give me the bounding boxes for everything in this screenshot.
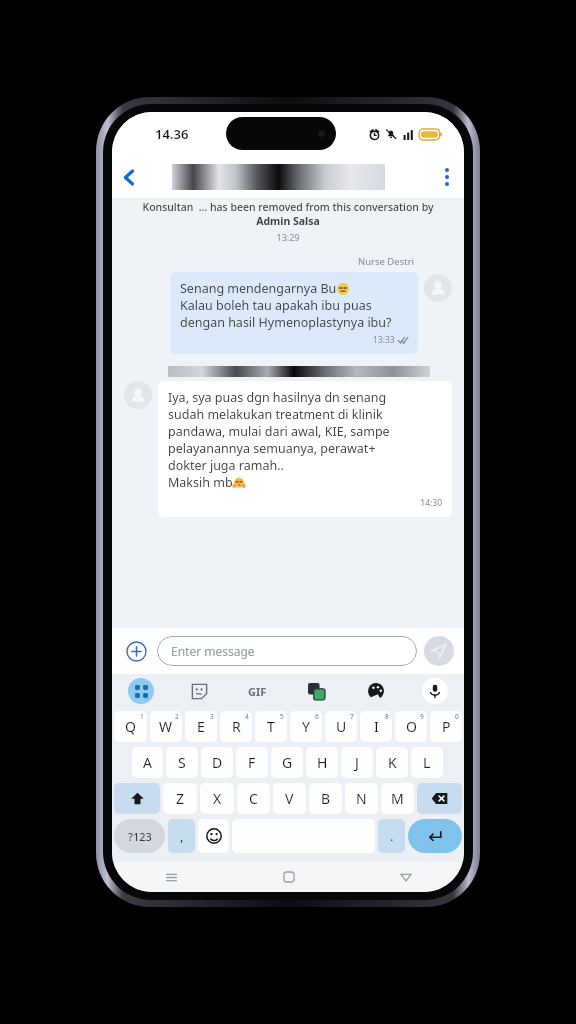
staticText: dokter juga ramah..	[168, 457, 284, 474]
button[interactable]: Apps	[128, 678, 154, 704]
button[interactable]: Emoji	[198, 819, 229, 853]
button[interactable]: K	[376, 747, 408, 778]
staticText: 7	[350, 712, 354, 721]
staticText: H	[317, 753, 328, 772]
staticText: Q	[125, 717, 136, 736]
button[interactable]: Z	[163, 783, 197, 814]
button[interactable]: ?123	[114, 819, 165, 853]
staticText: W	[159, 717, 173, 736]
staticText: 8	[385, 712, 389, 721]
staticText: Konsultan … has been removed from this c…	[124, 200, 452, 214]
button[interactable]: F	[236, 747, 268, 778]
staticText: J	[355, 753, 359, 772]
button[interactable]: Backspace	[417, 783, 462, 814]
staticText: A	[143, 753, 152, 772]
button[interactable]: N	[345, 783, 378, 814]
staticText: Enter message	[171, 643, 255, 659]
staticText: 14:30	[168, 497, 442, 509]
button[interactable]: C	[237, 783, 270, 814]
staticText: P	[442, 717, 451, 736]
staticText: Admin Salsa	[124, 214, 452, 228]
button[interactable]: Stickers	[170, 674, 228, 708]
button[interactable]: P	[430, 711, 462, 742]
staticText: 13:29	[124, 231, 452, 243]
button[interactable]: Enter message	[157, 636, 417, 666]
staticText: dengan hasil Hymenoplastynya ibu?	[180, 314, 392, 331]
button[interactable]: H	[306, 747, 338, 778]
staticText: V	[285, 789, 294, 808]
button[interactable]: Shift	[114, 783, 160, 814]
button[interactable]	[146, 156, 430, 198]
staticText: 13:33	[373, 334, 395, 346]
staticText: pandawa, mulai dari awal, KIE, sampe	[168, 423, 390, 440]
staticText: I	[374, 717, 379, 736]
staticText: Iya, sya puas dgn hasilnya dn senang	[168, 389, 387, 406]
button[interactable]: Send	[424, 636, 454, 666]
staticText: 1	[140, 712, 144, 721]
button[interactable]: V	[273, 783, 306, 814]
button[interactable]: B	[309, 783, 342, 814]
staticText: 3	[210, 712, 214, 721]
button[interactable]: T	[255, 711, 287, 742]
button[interactable]: J	[341, 747, 373, 778]
button[interactable]: Y	[290, 711, 322, 742]
button[interactable]: Q	[114, 711, 147, 742]
button[interactable]: Translate	[287, 674, 346, 708]
staticText: U	[336, 717, 347, 736]
button[interactable]: W	[150, 711, 182, 742]
staticText: N	[356, 789, 367, 808]
button[interactable]: G	[271, 747, 303, 778]
staticText: K	[388, 753, 397, 772]
button[interactable]: Voice input	[422, 678, 448, 704]
staticText: ?123	[128, 829, 152, 844]
staticText: F	[248, 753, 256, 772]
button[interactable]: Enter	[408, 819, 462, 853]
button[interactable]: U	[325, 711, 357, 742]
staticText: 4	[245, 712, 249, 721]
staticText: X	[213, 789, 222, 808]
button[interactable]: Iya, sya puas dgn hasilnya dn senang	[158, 381, 452, 517]
staticText: 2	[175, 712, 179, 721]
staticText: Z	[176, 789, 185, 808]
button[interactable]: ,	[168, 819, 195, 853]
staticText: B	[321, 789, 331, 808]
staticText: S	[178, 753, 186, 772]
button[interactable]: Themes	[346, 674, 405, 708]
button[interactable]: E	[185, 711, 217, 742]
button[interactable]: Recent apps	[112, 862, 230, 892]
staticText: .	[390, 827, 394, 845]
button[interactable]: R	[220, 711, 252, 742]
button[interactable]: GIF	[228, 674, 287, 708]
staticText: D	[212, 753, 223, 772]
staticText: ,	[180, 827, 184, 845]
staticText: T	[267, 717, 275, 736]
staticText: 0	[455, 712, 459, 721]
button[interactable]: .	[378, 819, 405, 853]
staticText: 14.36	[155, 125, 189, 143]
button[interactable]: More options	[430, 156, 464, 198]
button[interactable]: S	[166, 747, 198, 778]
staticText: 5	[280, 712, 284, 721]
button[interactable]: Back	[112, 156, 146, 198]
button[interactable]: I	[360, 711, 392, 742]
button[interactable]: Back	[347, 862, 464, 892]
button[interactable]: D	[201, 747, 233, 778]
button[interactable]: O	[395, 711, 427, 742]
button[interactable]: L	[411, 747, 443, 778]
staticText: G	[282, 753, 293, 772]
button[interactable]: A	[132, 747, 163, 778]
staticText: 9	[420, 712, 424, 721]
staticText: C	[249, 789, 258, 808]
button[interactable]: Add attachment	[122, 637, 150, 665]
staticText: Nurse Destri	[124, 255, 414, 268]
staticText: L	[423, 753, 431, 772]
staticText: pelayanannya semuanya, perawat+	[168, 440, 376, 457]
staticText: Maksih mb	[168, 474, 233, 491]
staticText: sudah melakukan treatment di klinik	[168, 406, 383, 423]
button[interactable]: X	[200, 783, 234, 814]
button[interactable]: Senang mendengarnya Bu	[170, 272, 418, 354]
button[interactable]: Home	[230, 862, 347, 892]
button[interactable]: M	[381, 783, 414, 814]
staticText: O	[406, 717, 417, 736]
